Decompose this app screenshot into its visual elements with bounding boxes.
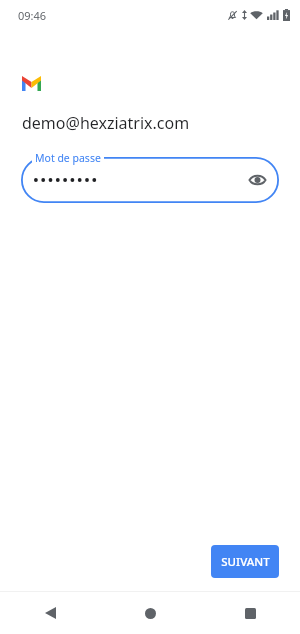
staticText: 09:46 bbox=[18, 8, 47, 23]
staticText: demo@hexziatrix.com bbox=[22, 112, 190, 134]
button[interactable]: Mot de passe bbox=[21, 157, 279, 203]
button[interactable]: Afficher le mot de passe bbox=[244, 167, 270, 193]
button[interactable]: Applications récentes bbox=[233, 596, 267, 630]
button[interactable]: Retour bbox=[33, 596, 67, 630]
button[interactable]: Accueil bbox=[133, 596, 167, 630]
button[interactable]: SUIVANT bbox=[211, 545, 279, 578]
staticText: SUIVANT bbox=[221, 554, 270, 570]
staticText: Mot de passe bbox=[35, 151, 101, 165]
